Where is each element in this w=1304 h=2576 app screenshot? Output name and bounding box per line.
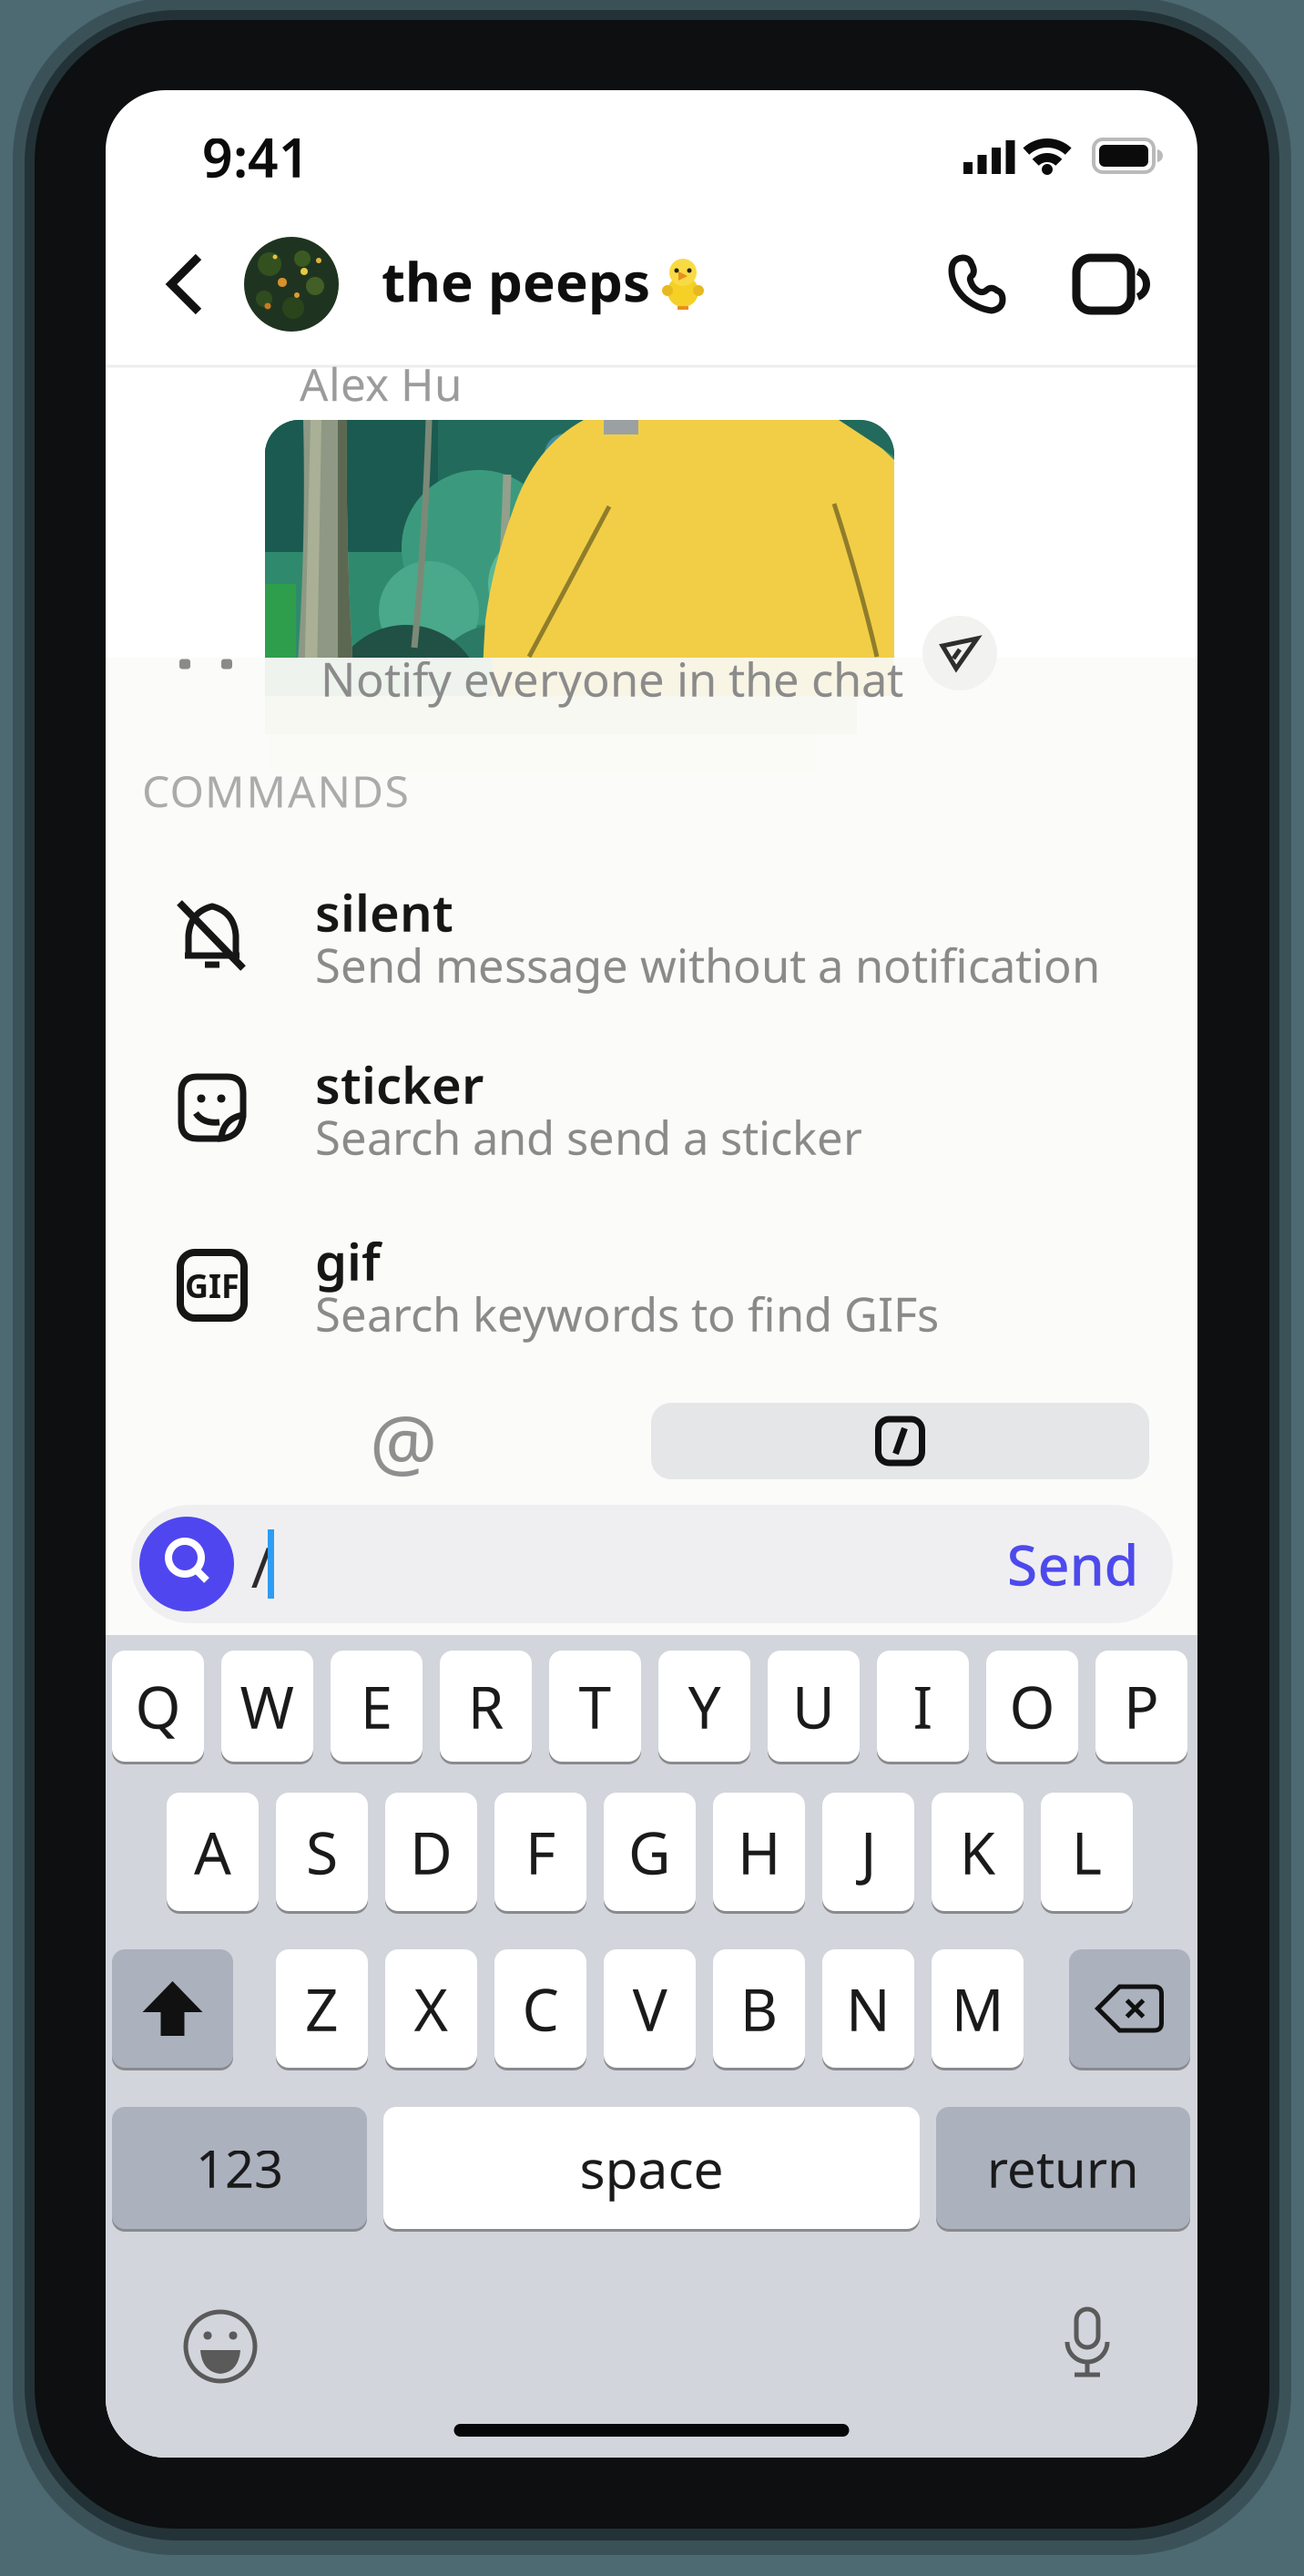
staticText: Notify everyone in the chat (321, 648, 903, 709)
button[interactable]: Delete (1069, 1948, 1190, 2069)
staticText: Q (135, 1667, 181, 1745)
staticText: Alex Hu (300, 354, 462, 413)
staticText: I (913, 1667, 933, 1745)
staticText: O (1009, 1667, 1055, 1745)
staticText: J (861, 1813, 876, 1891)
button[interactable]: 123 (112, 2106, 367, 2230)
staticText: G (628, 1813, 671, 1891)
staticText: C (522, 1970, 559, 2047)
staticText: L (1071, 1813, 1102, 1891)
staticText: silent (315, 878, 453, 946)
staticText: the peeps (382, 244, 650, 317)
staticText: X (414, 1970, 448, 2047)
staticText: P (1124, 1667, 1159, 1745)
staticText: space (580, 2132, 723, 2203)
button[interactable]: Video call (1075, 255, 1151, 313)
button[interactable]: T (549, 1649, 641, 1763)
button[interactable]: N (822, 1948, 914, 2069)
staticText: Z (305, 1970, 339, 2047)
button[interactable]: Forward (922, 616, 997, 690)
button[interactable]: I (877, 1649, 969, 1763)
staticText: V (632, 1970, 667, 2047)
button[interactable]: Send (991, 1514, 1155, 1614)
staticText: E (360, 1667, 393, 1745)
button[interactable]: J (822, 1791, 914, 1912)
staticText: D (410, 1813, 453, 1891)
button[interactable]: F (494, 1791, 586, 1912)
staticText: 123 (196, 2134, 283, 2202)
button[interactable]: S (276, 1791, 368, 1912)
button[interactable]: Commands (651, 1403, 1149, 1479)
button[interactable]: H (713, 1791, 805, 1912)
staticText: F (525, 1813, 555, 1891)
button[interactable]: Dictate (1060, 2305, 1115, 2382)
staticText: COMMANDS (142, 762, 408, 820)
button[interactable]: Z (276, 1948, 368, 2069)
button[interactable]: M (932, 1948, 1024, 2069)
button[interactable]: A (167, 1791, 259, 1912)
button[interactable]: R (440, 1649, 532, 1763)
button[interactable]: Back (166, 253, 206, 315)
button[interactable]: G (604, 1791, 696, 1912)
staticText: Send (1007, 1527, 1139, 1601)
button[interactable]: K (932, 1791, 1024, 1912)
staticText: Search keywords to find GIFs (315, 1283, 939, 1344)
button[interactable]: Shift (112, 1948, 233, 2069)
staticText: Search and send a sticker (315, 1106, 862, 1167)
button[interactable]: D (385, 1791, 477, 1912)
button[interactable]: Mention (349, 1403, 458, 1479)
staticText: gif (315, 1227, 381, 1295)
button[interactable]: U (768, 1649, 860, 1763)
button[interactable]: W (221, 1649, 313, 1763)
staticText: @ (370, 1391, 437, 1491)
button[interactable]: space (383, 2106, 920, 2230)
staticText: sticker (315, 1050, 484, 1118)
staticText: M (951, 1970, 1004, 2047)
button[interactable]: sticker (106, 1031, 1197, 1186)
staticText: S (306, 1813, 338, 1891)
button[interactable]: V (604, 1948, 696, 2069)
button[interactable]: Audio call (944, 252, 1008, 316)
button[interactable]: Y (658, 1649, 750, 1763)
button[interactable]: E (331, 1649, 423, 1763)
staticText: W (240, 1667, 295, 1745)
staticText: H (738, 1813, 780, 1891)
button[interactable]: O (986, 1649, 1078, 1763)
button[interactable]: Chat details (244, 237, 339, 332)
staticText: return (987, 2134, 1139, 2202)
button[interactable]: X (385, 1948, 477, 2069)
button[interactable]: Message (131, 1505, 1173, 1623)
button[interactable]: return (936, 2106, 1190, 2230)
staticText: K (959, 1813, 996, 1891)
button[interactable]: GIF from Alex Hu (265, 420, 894, 730)
button[interactable]: C (494, 1948, 586, 2069)
staticText: Send message without a notification (315, 934, 1100, 995)
staticText: A (194, 1813, 231, 1891)
button[interactable]: P (1095, 1649, 1187, 1763)
staticText: B (740, 1970, 778, 2047)
staticText: / (251, 1528, 272, 1604)
staticText: GIF (185, 1263, 239, 1307)
button[interactable]: silent (106, 859, 1197, 1014)
button[interactable]: GIF (106, 1208, 1197, 1363)
staticText: T (579, 1667, 611, 1745)
button[interactable]: L (1041, 1791, 1133, 1912)
staticText: Y (688, 1667, 721, 1745)
staticText: N (846, 1970, 891, 2047)
staticText: R (468, 1667, 504, 1745)
button[interactable]: Emoji (182, 2308, 259, 2385)
button[interactable]: B (713, 1948, 805, 2069)
staticText: 9:41 (202, 121, 310, 192)
button[interactable]: Q (112, 1649, 204, 1763)
staticText: U (792, 1667, 835, 1745)
